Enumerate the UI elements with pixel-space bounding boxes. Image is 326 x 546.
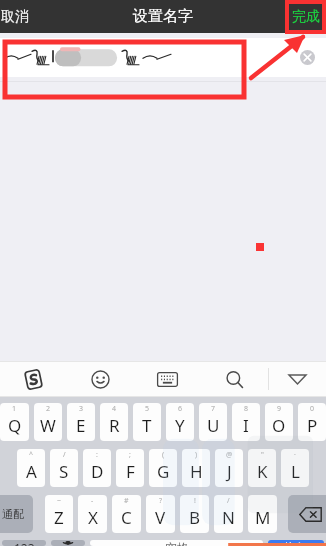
staticText: # <box>124 496 129 506</box>
staticText: Z <box>54 506 64 529</box>
staticText: / <box>63 450 66 460</box>
staticText: M <box>255 506 271 529</box>
button[interactable]: 换行 <box>268 540 324 546</box>
button[interactable]: 清除 <box>300 50 315 65</box>
button[interactable]: / <box>214 495 243 533</box>
button[interactable]: 取消 <box>0 1 39 33</box>
staticText: 4 <box>112 404 117 414</box>
button[interactable]: - <box>78 495 107 533</box>
button[interactable]: # <box>112 495 141 533</box>
staticText: - <box>91 496 94 506</box>
button[interactable]: 0 <box>298 403 326 441</box>
button[interactable]: ; <box>116 449 144 487</box>
button[interactable]: ? <box>146 495 175 533</box>
button[interactable]: 通配 <box>0 495 33 533</box>
staticText: E <box>76 414 86 437</box>
staticText: : <box>96 450 98 460</box>
staticText: K <box>257 460 268 483</box>
staticText: T <box>142 414 152 437</box>
staticText: 1 <box>12 404 17 414</box>
button[interactable]: 8 <box>232 403 260 441</box>
staticText: 空格 <box>165 540 189 546</box>
staticText: I <box>243 414 249 437</box>
button[interactable]: 9 <box>265 403 293 441</box>
button[interactable]: 4 <box>100 403 128 441</box>
staticText: 7 <box>211 404 216 414</box>
button[interactable]: @ <box>215 449 243 487</box>
staticText: ? <box>159 496 163 506</box>
button[interactable]: 完成 <box>282 1 326 33</box>
button[interactable]: 1 <box>0 403 29 441</box>
staticText: 6 <box>178 404 183 414</box>
staticText: 取消 <box>1 8 29 26</box>
button[interactable]: ! <box>180 495 209 533</box>
staticText: " <box>261 450 264 460</box>
staticText: 9 <box>277 404 282 414</box>
button[interactable]: ~ <box>45 495 73 533</box>
staticText: A <box>26 460 37 483</box>
staticText: S <box>59 460 69 483</box>
staticText: P <box>307 414 318 437</box>
staticText: ~ <box>57 496 62 506</box>
button[interactable]: 7 <box>199 403 227 441</box>
staticText: H <box>190 460 203 483</box>
button[interactable]: 2 <box>34 403 62 441</box>
staticText: N <box>222 506 235 529</box>
button[interactable]: 表情 <box>67 361 134 397</box>
button[interactable]: / <box>50 449 78 487</box>
staticText: @ <box>226 450 233 460</box>
staticText: 设置名字 <box>133 7 193 26</box>
staticText: 123 <box>14 540 35 546</box>
button[interactable]: M <box>248 495 277 533</box>
button[interactable]: · <box>281 449 309 487</box>
button[interactable]: 空格 <box>90 540 263 546</box>
staticText: 2 <box>46 404 51 414</box>
staticText: U <box>207 414 220 437</box>
button[interactable]: 清除 <box>0 38 326 77</box>
staticText: W <box>40 414 56 437</box>
button[interactable]: 3 <box>67 403 95 441</box>
staticText: ! <box>194 496 196 506</box>
staticText: R <box>109 414 120 437</box>
staticText: 0 <box>310 404 315 414</box>
button[interactable]: 6 <box>166 403 194 441</box>
staticText: · <box>294 450 296 460</box>
staticText: / <box>227 496 230 506</box>
staticText: X <box>88 506 98 529</box>
button[interactable]: ^ <box>17 449 45 487</box>
button[interactable]: ) <box>182 449 210 487</box>
button[interactable]: 搜索 <box>201 361 268 397</box>
staticText: C <box>121 506 132 529</box>
staticText: Y <box>175 414 185 437</box>
staticText: ( <box>162 450 165 460</box>
button[interactable]: 收起键盘 <box>269 361 326 397</box>
button[interactable]: 输入法 <box>0 361 67 397</box>
staticText: ) <box>195 450 198 460</box>
staticText: L <box>291 460 300 483</box>
staticText: ^ <box>29 450 34 460</box>
button[interactable]: 退格 <box>288 495 326 533</box>
button[interactable]: 语音输入 <box>51 540 85 546</box>
staticText: Q <box>8 414 22 437</box>
staticText: O <box>272 414 286 437</box>
button[interactable]: 5 <box>133 403 161 441</box>
staticText: B <box>189 506 201 529</box>
staticText: G <box>157 460 170 483</box>
button[interactable]: : <box>83 449 111 487</box>
staticText: 5 <box>145 404 150 414</box>
button[interactable]: " <box>248 449 276 487</box>
staticText: J <box>227 460 232 483</box>
staticText: 换行 <box>284 540 308 546</box>
staticText: 完成 <box>292 8 320 26</box>
staticText: 8 <box>244 404 249 414</box>
button[interactable]: 键盘 <box>134 361 201 397</box>
staticText: 通配 <box>2 507 24 521</box>
staticText: V <box>155 506 166 529</box>
staticText: ; <box>129 450 131 460</box>
button[interactable]: ( <box>149 449 177 487</box>
staticText: F <box>126 460 135 483</box>
button[interactable]: 123 <box>2 540 46 546</box>
staticText: 3 <box>79 404 84 414</box>
staticText: D <box>91 460 104 483</box>
